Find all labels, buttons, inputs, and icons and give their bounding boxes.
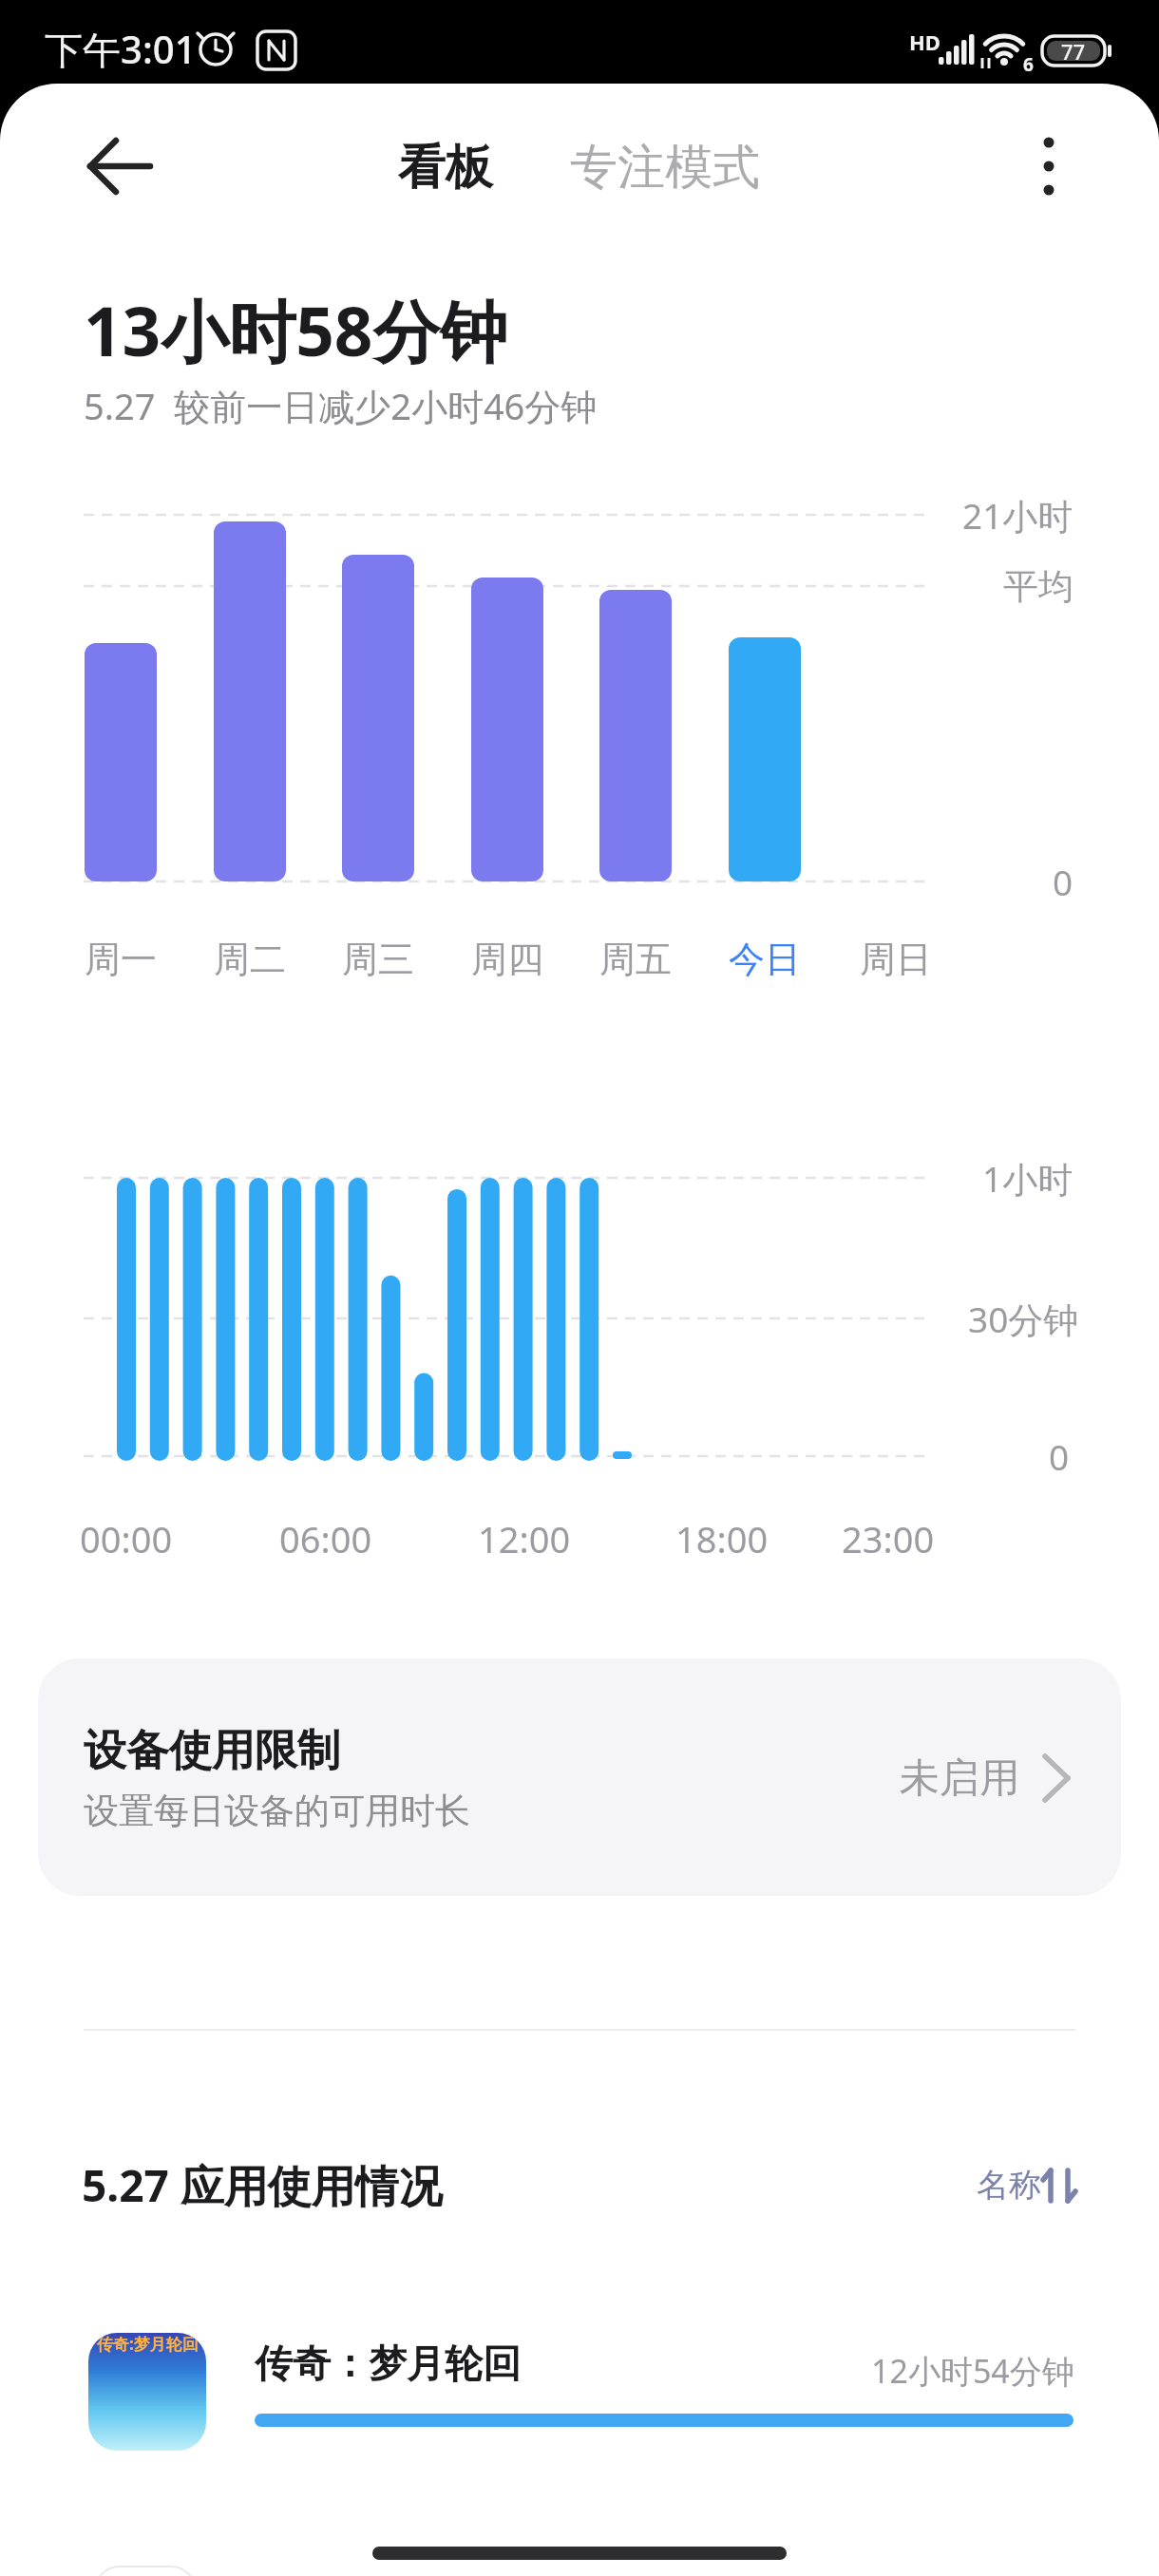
staticText: 周二 [214, 937, 286, 982]
staticText: 23:00 [842, 1514, 935, 1563]
staticText: 未启用 [900, 1753, 1019, 1804]
staticText: 看板 [398, 138, 493, 198]
staticText: 周五 [599, 937, 672, 982]
button[interactable]: 看板 [398, 129, 493, 205]
button[interactable]: 专注模式 [570, 129, 760, 205]
button[interactable] [38, 2318, 1121, 2460]
staticText: 0 [1053, 858, 1073, 905]
button[interactable] [66, 133, 171, 199]
staticText: 18:00 [675, 1514, 769, 1563]
staticText: 1小时 [982, 1154, 1073, 1203]
staticText: 专注模式 [570, 138, 760, 198]
staticText: 21小时 [962, 491, 1073, 540]
staticText: 传奇：梦月轮回 [255, 2339, 521, 2387]
staticText: 今日 [729, 937, 801, 982]
staticText: 设备使用限制 [84, 1724, 340, 1778]
button[interactable] [1016, 133, 1083, 199]
staticText: 5.27 较前一日减少2小时46分钟 [84, 381, 598, 430]
staticText: 0 [1049, 1432, 1070, 1480]
staticText: 30分钟 [968, 1295, 1079, 1343]
button[interactable] [964, 2149, 1088, 2221]
staticText: 传奇:梦月轮回 [97, 2333, 199, 2355]
button[interactable] [38, 1658, 1121, 1896]
staticText: 12小时54分钟 [871, 2349, 1074, 2393]
staticText: 5.27 应用使用情况 [82, 2155, 443, 2215]
staticText: 平均 [1003, 564, 1073, 609]
staticText: 13小时58分钟 [84, 284, 508, 376]
staticText: 77 [1061, 37, 1086, 66]
staticText: 周三 [342, 937, 414, 982]
staticText: 12:00 [478, 1514, 571, 1563]
staticText: 周四 [471, 937, 543, 982]
staticText: 名称 [977, 2165, 1041, 2206]
staticText: 6 [1023, 52, 1034, 77]
staticText: 周日 [860, 937, 932, 982]
staticText: 下午3:01 [45, 23, 197, 75]
staticText: 00:00 [80, 1514, 173, 1563]
staticText: 周一 [85, 937, 157, 982]
staticText: 设置每日设备的可用时长 [84, 1789, 470, 1833]
staticText: HD [909, 28, 940, 56]
staticText: 06:00 [279, 1514, 372, 1563]
